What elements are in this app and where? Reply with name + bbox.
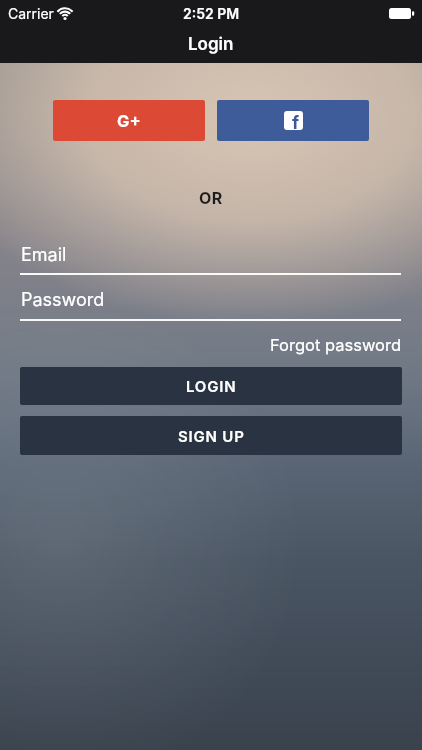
staticText: Email <box>21 244 67 266</box>
button[interactable]: Password <box>21 289 105 311</box>
button[interactable]: LOGIN <box>20 367 402 405</box>
staticText: OR <box>199 188 223 207</box>
staticText: SIGN UP <box>178 427 245 445</box>
staticText: LOGIN <box>186 377 237 395</box>
button[interactable]: Email <box>21 244 67 266</box>
staticText: Carrier <box>8 5 54 22</box>
staticText: Forgot password <box>270 335 402 355</box>
button[interactable]: f <box>217 100 369 141</box>
staticText: Password <box>21 289 105 311</box>
button[interactable]: G+ <box>53 100 205 141</box>
staticText: 2:52 PM <box>183 5 240 22</box>
staticText: Login <box>188 34 234 55</box>
button[interactable]: SIGN UP <box>20 416 402 455</box>
staticText: G+ <box>117 111 141 131</box>
staticText: f <box>292 112 300 130</box>
button[interactable]: Forgot password <box>270 335 402 355</box>
